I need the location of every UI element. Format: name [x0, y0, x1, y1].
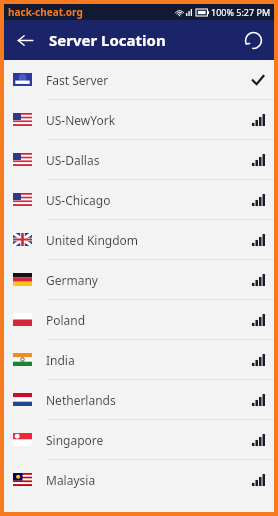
staticText: Germany: [46, 272, 252, 288]
button[interactable]: India: [4, 340, 274, 379]
button[interactable]: US-Dallas: [4, 140, 274, 179]
staticText: US-Dallas: [46, 152, 252, 168]
staticText: US-NewYork: [46, 112, 252, 128]
button[interactable]: Refresh: [238, 25, 268, 55]
button[interactable]: Germany: [4, 260, 274, 299]
staticText: Poland: [46, 312, 252, 328]
button[interactable]: US-NewYork: [4, 100, 274, 139]
staticText: Netherlands: [46, 392, 252, 408]
staticText: US-Chicago: [46, 192, 252, 208]
staticText: hack-cheat.org: [8, 5, 83, 19]
button[interactable]: United Kingdom: [4, 220, 274, 259]
staticText: Server Location: [49, 30, 166, 50]
staticText: United Kingdom: [46, 232, 252, 248]
button[interactable]: Poland: [4, 300, 274, 339]
button[interactable]: Singapore: [4, 420, 274, 459]
staticText: Singapore: [46, 432, 252, 448]
button[interactable]: Netherlands: [4, 380, 274, 419]
button[interactable]: US-Chicago: [4, 180, 274, 219]
staticText: India: [46, 352, 252, 368]
staticText: Fast Server: [46, 72, 251, 88]
button[interactable]: Malaysia: [4, 460, 274, 499]
staticText: 100% 5:27 PM: [211, 6, 271, 18]
button[interactable]: Fast Server: [4, 60, 274, 99]
staticText: Malaysia: [46, 472, 252, 488]
button[interactable]: Back: [10, 25, 40, 55]
